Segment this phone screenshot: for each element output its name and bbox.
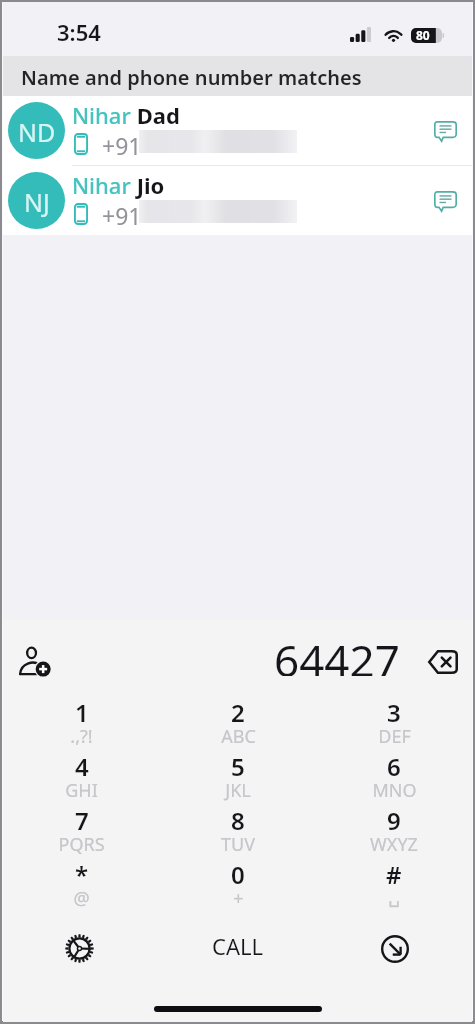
button[interactable]: 1 xyxy=(3,696,160,750)
staticText: @ xyxy=(73,886,90,911)
staticText: ND xyxy=(18,115,56,149)
staticText: PQRS xyxy=(58,832,105,857)
staticText: WXYZ xyxy=(370,832,418,857)
button[interactable]: 0 xyxy=(160,858,316,912)
staticText: 80 xyxy=(416,27,430,43)
staticText: ␣ xyxy=(388,886,400,907)
staticText: +91 xyxy=(102,130,142,161)
button[interactable]: 9 xyxy=(316,804,472,858)
button[interactable]: Backspace xyxy=(423,642,463,682)
staticText: 9 xyxy=(387,804,401,837)
button[interactable]: * xyxy=(3,858,160,912)
staticText: CALL xyxy=(212,931,264,961)
staticText: TUV xyxy=(221,832,255,857)
staticText: # xyxy=(386,858,402,891)
staticText: 4 xyxy=(75,750,89,783)
staticText: * xyxy=(75,858,89,891)
staticText: 64427 xyxy=(274,630,400,676)
button[interactable]: 8 xyxy=(160,804,316,858)
staticText: .,?! xyxy=(70,724,93,749)
staticText: Jio xyxy=(131,170,165,200)
staticText: 0 xyxy=(231,858,245,891)
staticText: +91 xyxy=(102,200,142,231)
staticText: 3 xyxy=(387,696,401,729)
staticText: 8 xyxy=(231,804,245,837)
button[interactable]: ND xyxy=(3,96,472,165)
staticText: 2 xyxy=(231,696,245,729)
staticText: MNO xyxy=(372,778,417,803)
button[interactable]: # xyxy=(316,858,472,912)
button[interactable]: 6 xyxy=(316,750,472,804)
staticText: DEF xyxy=(378,724,411,749)
button[interactable]: 7 xyxy=(3,804,160,858)
staticText: 7 xyxy=(75,804,89,837)
button[interactable]: Settings xyxy=(56,925,102,971)
staticText: 6 xyxy=(387,750,401,783)
button[interactable]: 3 xyxy=(316,696,472,750)
staticText: 1 xyxy=(75,696,89,729)
staticText: ABC xyxy=(221,724,256,749)
staticText: 3:54 xyxy=(57,17,101,47)
button[interactable]: CALL xyxy=(196,924,280,968)
staticText: + xyxy=(233,886,244,911)
button[interactable]: 5 xyxy=(160,750,316,804)
button[interactable]: Message xyxy=(421,177,469,225)
button[interactable]: 2 xyxy=(160,696,316,750)
staticText: GHI xyxy=(65,778,98,803)
button[interactable]: Message xyxy=(421,107,469,155)
staticText: 5 xyxy=(231,750,245,783)
button[interactable]: NJ xyxy=(3,166,472,235)
staticText: Name and phone number matches xyxy=(21,64,362,91)
staticText: NJ xyxy=(24,185,50,219)
staticText: JKL xyxy=(225,778,251,803)
button[interactable]: Hide dialpad xyxy=(372,926,418,972)
staticText: Nihar xyxy=(72,170,131,200)
staticText: Nihar xyxy=(72,100,131,130)
button[interactable]: Add contact xyxy=(15,641,55,681)
button[interactable]: 4 xyxy=(3,750,160,804)
staticText: Dad xyxy=(131,100,180,130)
